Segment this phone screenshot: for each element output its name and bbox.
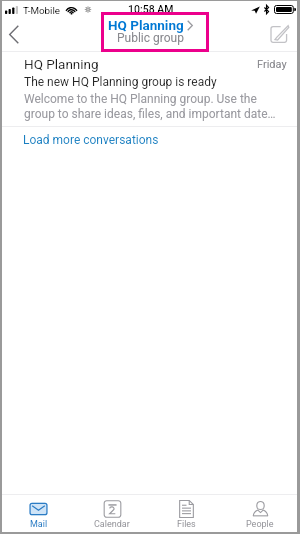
staticText: 10:58 AM <box>128 3 174 15</box>
button[interactable]: Mail <box>2 495 75 532</box>
staticText: People <box>246 519 274 530</box>
button[interactable]: Files <box>149 495 223 532</box>
button[interactable]: People <box>223 495 297 532</box>
button[interactable]: Calendar <box>75 495 149 532</box>
staticText: T-Mobile <box>23 5 61 16</box>
staticText: HQ Planning <box>108 17 184 33</box>
button[interactable]: HQ Planning <box>2 52 297 126</box>
staticText: The new HQ Planning group is ready <box>24 75 217 89</box>
staticText: Friday <box>257 58 287 71</box>
button[interactable]: HQ Planning <box>99 16 201 48</box>
staticText: Load more conversations <box>23 133 159 147</box>
staticText: Files <box>177 519 196 530</box>
button[interactable]: Compose new message <box>264 17 297 51</box>
staticText: Public group <box>117 31 184 45</box>
staticText: Welcome to the HQ Planning group. Use th… <box>24 92 287 121</box>
staticText: Calendar <box>94 519 130 530</box>
button[interactable]: Back <box>2 17 26 51</box>
button[interactable]: Load more conversations <box>2 127 297 153</box>
staticText: HQ Planning <box>24 56 257 72</box>
staticText: Mail <box>30 519 48 530</box>
